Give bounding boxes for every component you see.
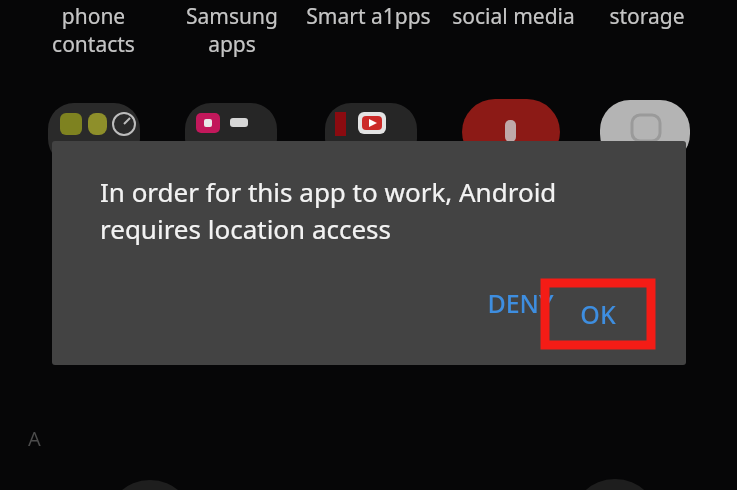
button[interactable]: phone contacts (0, 2, 188, 58)
staticText: Smart a1pps (306, 2, 431, 31)
button[interactable]: Smart a1pps (273, 2, 463, 31)
button[interactable]: Samsung apps (137, 2, 327, 58)
staticText: OK (580, 297, 616, 331)
button[interactable]: DENY (456, 272, 584, 334)
staticText: A (28, 425, 41, 452)
staticText: DENY (487, 286, 554, 320)
button[interactable]: social media (418, 2, 608, 31)
staticText: social media (452, 2, 575, 31)
staticText: phone contacts (52, 2, 135, 58)
staticText: Samsung apps (186, 2, 278, 58)
button[interactable]: storage (552, 2, 737, 31)
button[interactable]: OK (545, 283, 651, 345)
staticText: In order for this app to work, Android r… (100, 174, 604, 247)
staticText: storage (609, 2, 685, 31)
